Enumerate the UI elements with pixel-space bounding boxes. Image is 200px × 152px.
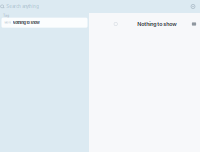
staticText: Nothing to show [137,21,176,27]
button[interactable]: More [1,18,87,28]
button[interactable]: Search anything [0,0,60,13]
staticText: Nothing to show [12,20,39,25]
staticText: Tag [3,13,9,18]
staticText: More [4,21,10,24]
staticText: Search anything [6,4,39,9]
button[interactable]: Settings [186,0,200,13]
button[interactable]: Toggle sidebar [188,18,200,30]
